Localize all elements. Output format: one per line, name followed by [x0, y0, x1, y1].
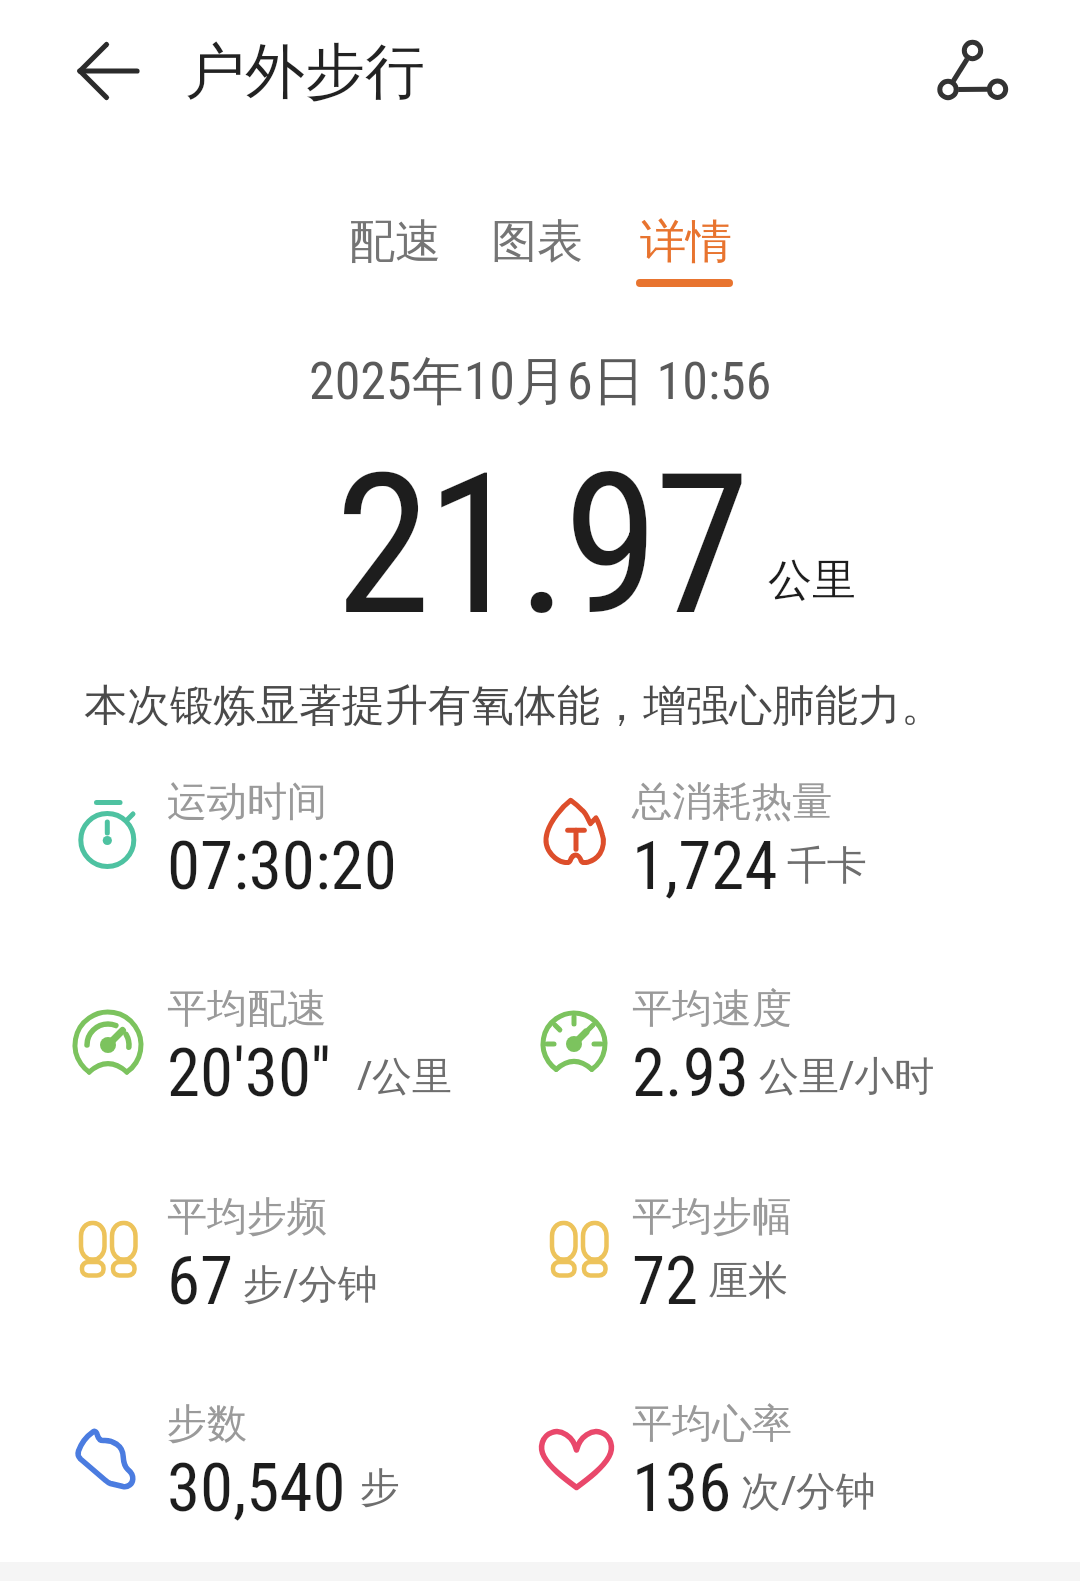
staticText: 72 [632, 1242, 699, 1321]
button[interactable] [60, 23, 156, 119]
staticText: 平均心率 [632, 1398, 792, 1448]
staticText: 平均步频 [167, 1191, 327, 1241]
staticText: 30,540 [167, 1449, 346, 1528]
staticText: 图表 [491, 213, 583, 271]
staticText: 步/分钟 [243, 1255, 378, 1310]
staticText: 1,724 [632, 827, 778, 906]
staticText: 公里 [768, 553, 856, 608]
staticText: 2025年10月6日 10:56 [309, 349, 772, 415]
staticText: 平均配速 [167, 983, 327, 1033]
staticText: 户外步行 [185, 34, 425, 110]
staticText: 2.93 [632, 1034, 749, 1113]
staticText: 次/分钟 [741, 1462, 876, 1517]
staticText: 运动时间 [167, 776, 327, 826]
staticText: 本次锻炼显著提升有氧体能，增强心肺能力。 [84, 679, 944, 733]
staticText: 136 [632, 1449, 732, 1528]
staticText: 配速 [349, 213, 441, 271]
staticText: 步数 [167, 1398, 247, 1448]
staticText: /公里 [357, 1047, 452, 1102]
button[interactable]: 图表 [471, 201, 563, 259]
staticText: 总消耗热量 [632, 776, 832, 826]
staticText: 千卡 [787, 840, 867, 890]
staticText: 平均步幅 [632, 1191, 792, 1241]
staticText: 67 [167, 1242, 234, 1321]
button[interactable] [920, 20, 1020, 120]
staticText: 步 [360, 1462, 400, 1512]
staticText: 21.97 [335, 432, 746, 659]
staticText: 07:30:20 [167, 827, 397, 906]
staticText: 公里/小时 [759, 1047, 934, 1102]
staticText: 平均速度 [632, 983, 792, 1033]
staticText: 厘米 [708, 1255, 788, 1305]
button[interactable]: 配速 [329, 201, 421, 259]
staticText: 20'30'' [167, 1034, 331, 1113]
button[interactable]: 详情 [620, 201, 712, 259]
staticText: 详情 [640, 213, 732, 271]
